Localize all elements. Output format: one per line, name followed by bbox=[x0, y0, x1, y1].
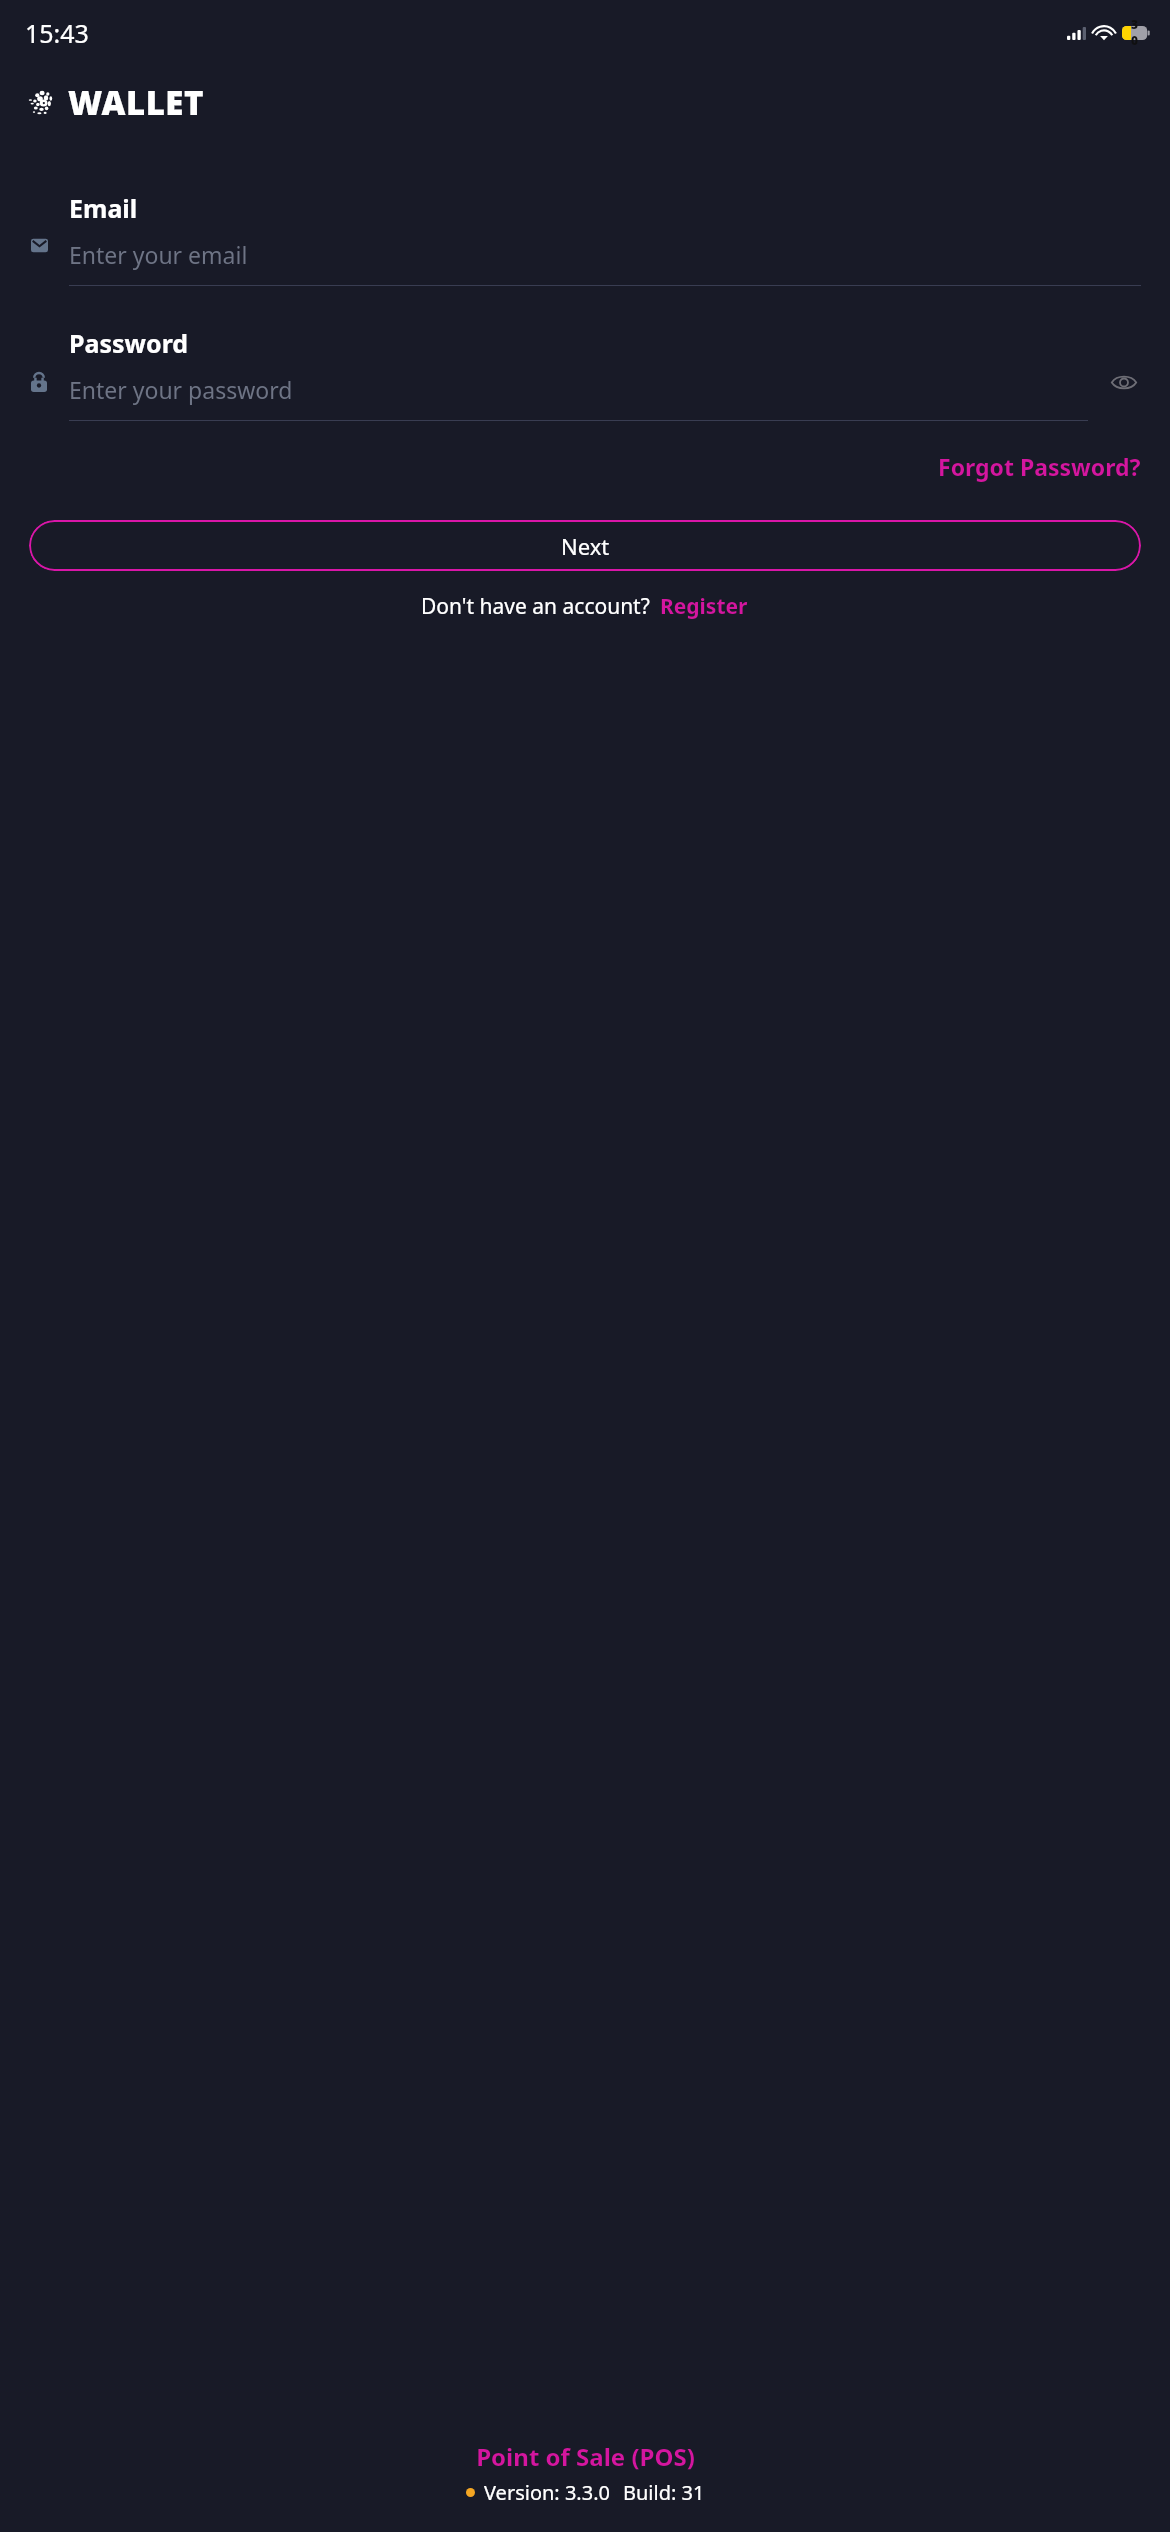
staticText: Enter your password bbox=[69, 374, 293, 405]
staticText: Point of Sale (POS) bbox=[476, 2440, 695, 2473]
staticText: Register bbox=[660, 592, 748, 621]
button[interactable]: Show password bbox=[1107, 370, 1141, 395]
staticText: Password bbox=[69, 326, 189, 360]
staticText: Version: 3.3.0 bbox=[484, 2479, 610, 2506]
staticText: 15:43 bbox=[25, 16, 89, 50]
button[interactable]: Email bbox=[0, 191, 1170, 286]
staticText: Enter your email bbox=[69, 239, 248, 270]
staticText: Don't have an account? bbox=[421, 592, 650, 621]
button[interactable]: Password bbox=[0, 326, 1170, 421]
staticText: Email bbox=[69, 191, 138, 225]
staticText: Build: 31 bbox=[623, 2479, 705, 2506]
staticText: WALLET bbox=[68, 80, 204, 125]
button[interactable]: Forgot Password? bbox=[909, 445, 1170, 488]
button[interactable]: Register bbox=[650, 588, 750, 625]
staticText: Next bbox=[561, 531, 610, 561]
button[interactable]: Next bbox=[29, 520, 1141, 571]
staticText: Forgot Password? bbox=[938, 451, 1141, 482]
